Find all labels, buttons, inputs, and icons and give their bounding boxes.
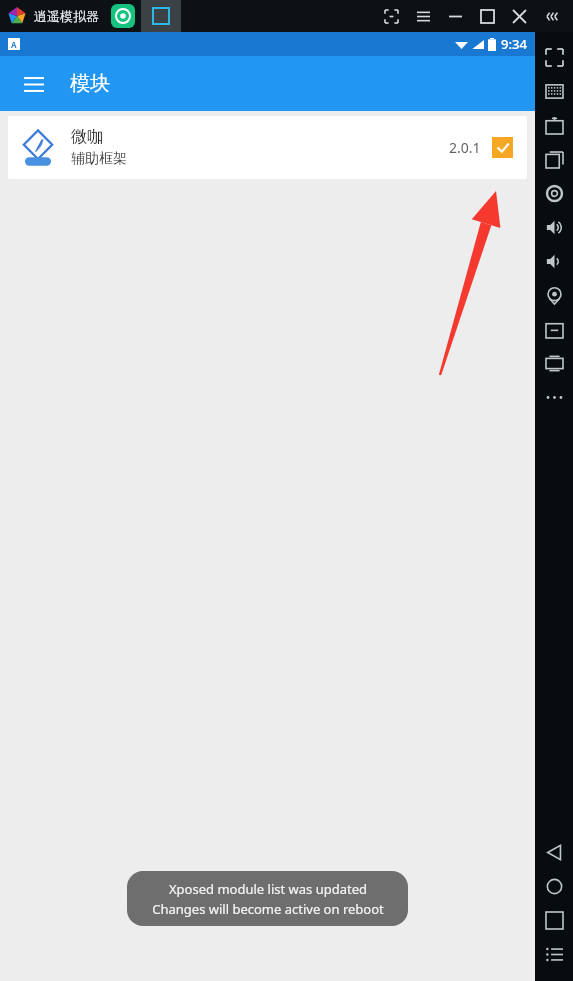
button[interactable]: Minimize [439,0,471,32]
button[interactable]: Menu [407,0,439,32]
staticText: 辅助框架 [71,150,127,168]
staticText: Changes will become active on reboot [152,900,384,918]
button[interactable]: Back [535,835,573,869]
button[interactable]: Sync [535,346,573,380]
button[interactable]: Task list [535,937,573,971]
button[interactable]: Maximize [471,0,503,32]
button[interactable]: Collapse [535,0,567,32]
staticText: 微咖 [71,127,103,147]
button[interactable]: Keyboard [535,74,573,108]
button[interactable]: Fullscreen [535,40,573,74]
staticText: 模块 [70,71,110,96]
button[interactable]: Home [535,869,573,903]
staticText: 逍遥模拟器 [34,8,99,24]
button[interactable]: Volume down [535,244,573,278]
button[interactable]: Open navigation drawer [14,64,54,104]
button[interactable]: Screenshot [375,0,407,32]
button[interactable]: Install APK [535,108,573,142]
button[interactable]: More [535,380,573,414]
staticText: 2.0.1 [449,138,481,157]
button[interactable]: Close [503,0,535,32]
staticText: A [11,39,17,50]
button[interactable]: Settings [535,176,573,210]
button[interactable]: Shared folder [535,312,573,346]
button[interactable]: 微咖 [8,116,527,179]
button[interactable] [141,0,181,32]
button[interactable]: Volume up [535,210,573,244]
button[interactable]: Recents [535,903,573,937]
button[interactable]: Multi window [535,142,573,176]
staticText: Xposed module list was updated [169,880,367,898]
button[interactable] [111,4,135,28]
button[interactable]: Location [535,278,573,312]
button[interactable]: Module enabled [492,137,513,158]
staticText: 9:34 [501,35,527,53]
